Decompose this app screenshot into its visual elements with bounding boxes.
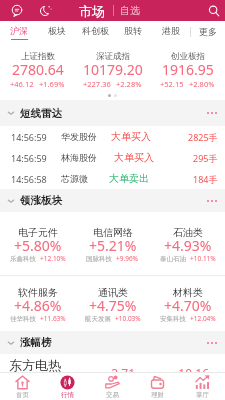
staticText: +4.75% [89,296,137,315]
staticText: 通讯类 [98,286,128,299]
staticText: 软件服务 [18,286,58,299]
staticText: 深证成指 [96,51,130,62]
staticText: 电子元件 [18,226,58,239]
staticText: 泰山石油 [160,255,186,263]
staticText: +52.15 [160,79,184,89]
button[interactable]: 科创板 [76,21,114,42]
button[interactable]: 市场 [79,3,105,19]
button[interactable]: Search [205,2,223,20]
staticText: +9.96% [116,254,139,263]
button[interactable]: 理财 [135,373,180,400]
staticText: 短线雷达 [20,107,62,120]
button[interactable]: 电信网络 [75,226,150,262]
staticText: 领涨板块 [20,194,62,207]
staticText: +12.04% [190,314,216,323]
button[interactable]: 软件服务 [0,286,75,322]
staticText: +2.80% [189,79,215,89]
button[interactable]: 14:56:59 [0,147,225,168]
button[interactable]: 领涨板块 [0,189,225,212]
button[interactable]: 沪深 [0,21,38,42]
staticText: 10.16% [174,365,209,397]
staticText: +4.70% [164,296,212,315]
staticText: 2780.64 [12,60,64,79]
staticText: +4.93% [164,236,212,255]
staticText: 行情 [61,391,74,399]
button[interactable]: Messages [9,3,25,19]
staticText: 300217 [9,372,37,383]
staticText: 上证指数 [21,51,55,62]
button[interactable]: 短线雷达 [0,100,225,126]
staticText: 股转 [124,25,142,36]
button[interactable]: 板块 [38,21,76,42]
staticText: 沪深 [10,25,28,36]
button[interactable]: 创业板指 [150,48,225,94]
staticText: 大单卖出 [109,172,149,185]
staticText: 更多 [199,26,217,37]
staticText: 掌厅 [196,391,209,399]
staticText: 184手 [193,173,218,185]
staticText: +4.86% [14,296,62,315]
staticText: +5.21% [89,236,137,255]
staticText: 创业板指 [171,51,205,62]
staticText: 航天发展 [85,315,111,323]
staticText: 10179.20 [83,60,143,79]
staticText: +12.10% [40,254,66,263]
staticText: 石油类 [173,226,203,239]
staticText: 2825手 [188,131,218,143]
staticText: 14:56:59 [11,131,47,143]
button[interactable]: 14:56:59 [0,126,225,147]
button[interactable]: 东方电热 [0,354,225,400]
button[interactable]: 14:56:58 [0,168,225,189]
staticText: +1.69% [39,79,65,89]
staticText: 科创板 [82,25,109,36]
button[interactable]: 行情 [45,373,90,400]
staticText: 林海股份 [61,152,97,163]
staticText: 佳华科技 [10,315,36,323]
staticText: 材料类 [173,286,203,299]
button[interactable]: 首页 [0,373,45,400]
staticText: +10.03% [115,314,141,323]
staticText: 理财 [151,391,164,399]
button[interactable]: 涨幅榜 [0,331,225,354]
staticText: 自选 [120,4,140,17]
button[interactable]: 港股 [152,21,190,42]
staticText: +227.36 [83,79,111,89]
staticText: +10.11% [190,254,216,263]
staticText: +5.80% [14,236,62,255]
button[interactable]: 电子元件 [0,226,75,262]
staticText: 乐鑫科技 [10,255,36,263]
button[interactable]: 自选 [120,4,140,17]
staticText: +46.12 [10,79,34,89]
staticText: 芯源微 [61,173,88,184]
button[interactable]: 材料类 [150,286,225,322]
button[interactable]: 交易 [90,373,135,400]
staticText: 交易 [106,391,119,399]
staticText: 14:56:59 [11,152,47,164]
staticText: 295手 [193,152,218,164]
staticText: 安集科技 [160,315,186,323]
staticText: 2.71 [110,365,135,381]
staticText: 大单买入 [111,130,151,143]
staticText: 国脉科技 [86,255,112,263]
staticText: 电信网络 [93,226,133,239]
button[interactable]: 更多 [191,21,225,42]
button[interactable]: 掌厅 [180,373,225,400]
staticText: 1916.95 [162,60,214,79]
staticText: 大单买入 [114,151,154,164]
staticText: 东方电热 [9,357,61,373]
staticText: +2.28% [116,79,142,89]
button[interactable]: 股转 [114,21,152,42]
staticText: 板块 [48,25,66,36]
staticText: 14:56:58 [11,173,47,185]
button[interactable]: 上证指数 [0,48,75,94]
staticText: 华发股份 [61,131,97,142]
staticText: 市场 [79,3,105,19]
staticText: 首页 [16,391,29,399]
button[interactable]: 深证成指 [75,48,150,94]
staticText: 港股 [162,25,180,36]
staticText: 涨幅榜 [20,336,52,349]
button[interactable]: 石油类 [150,226,225,262]
button[interactable]: 通讯类 [75,286,150,322]
button[interactable]: Night mode [38,3,54,19]
staticText: +11.63% [40,314,66,323]
